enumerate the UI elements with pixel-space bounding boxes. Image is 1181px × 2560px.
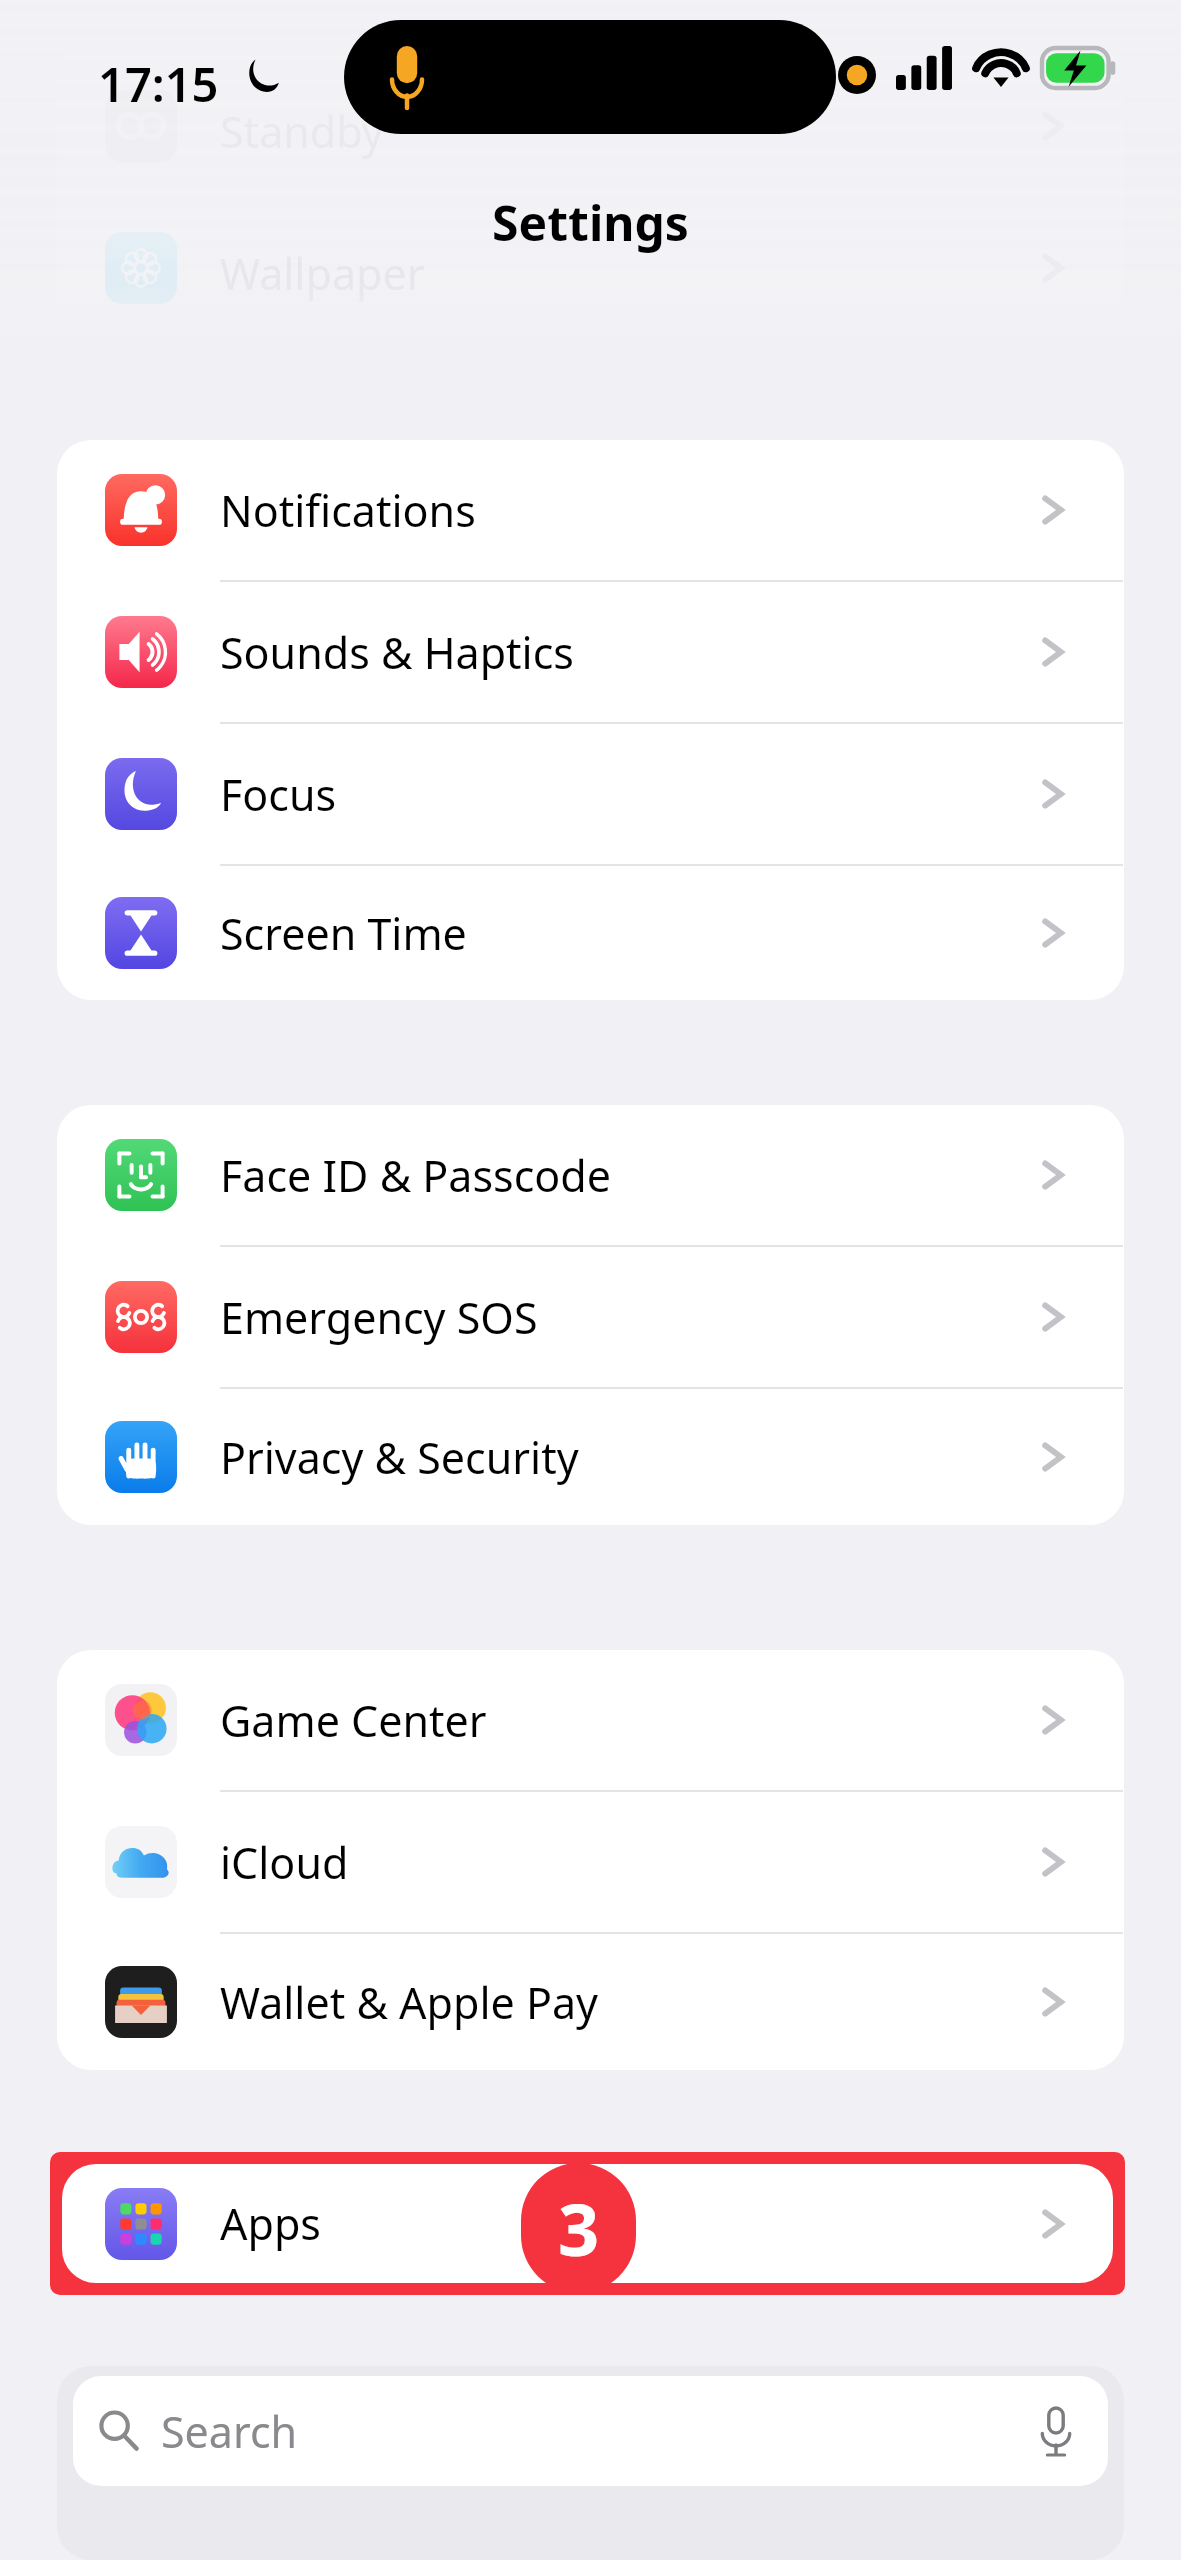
staticText: Apps	[220, 2194, 321, 2253]
button[interactable]: Emergency SOS	[57, 1247, 1124, 1387]
staticText: Focus	[220, 765, 337, 824]
staticText: Emergency SOS	[220, 1288, 538, 1347]
button[interactable]: Notifications	[57, 440, 1124, 580]
button[interactable]: Screen Time	[57, 866, 1124, 1000]
button[interactable]: Face ID & Passcode	[57, 1105, 1124, 1245]
staticText: Wallet & Apple Pay	[220, 1973, 599, 2032]
staticText: iCloud	[220, 1833, 349, 1892]
button[interactable]: Focus	[57, 724, 1124, 864]
button[interactable]: Privacy & Security	[57, 1389, 1124, 1525]
staticText: Search	[161, 2402, 298, 2461]
staticText: Settings	[492, 190, 689, 255]
staticText: Face ID & Passcode	[220, 1146, 611, 1205]
button[interactable]: Game Center	[57, 1650, 1124, 1790]
staticText: Standby	[220, 102, 384, 161]
button[interactable]: Search	[73, 2376, 1108, 2486]
staticText: Wallpaper	[220, 244, 425, 303]
other: Voice search	[1038, 2406, 1074, 2456]
staticText: Notifications	[220, 481, 476, 540]
button[interactable]: Sounds & Haptics	[57, 582, 1124, 722]
staticText: Game Center	[220, 1691, 487, 1750]
staticText: Sounds & Haptics	[220, 623, 574, 682]
staticText: 3	[558, 2179, 600, 2277]
staticText: Privacy & Security	[220, 1428, 579, 1487]
button[interactable]: Wallet & Apple Pay	[57, 1934, 1124, 2070]
staticText: Screen Time	[220, 904, 467, 963]
button[interactable]: iCloud	[57, 1792, 1124, 1932]
button[interactable]: Apps	[62, 2164, 1113, 2283]
staticText: 17:15	[98, 52, 219, 116]
